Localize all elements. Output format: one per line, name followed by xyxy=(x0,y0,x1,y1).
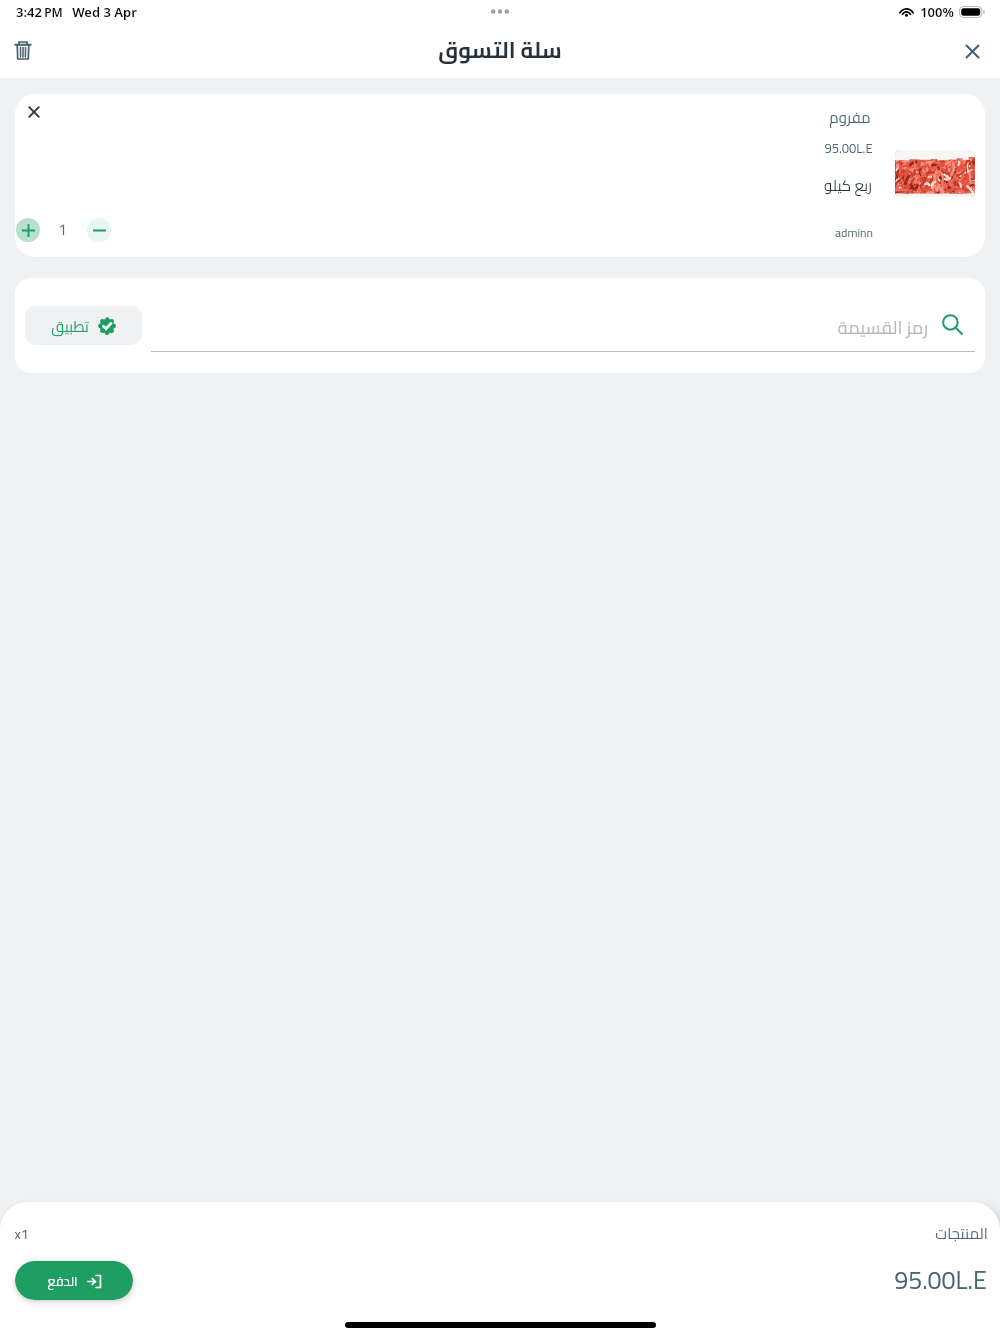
staticText: PM xyxy=(44,4,63,20)
button[interactable]: تطبيق xyxy=(25,306,142,345)
button[interactable]: Decrease quantity xyxy=(87,218,111,242)
button[interactable]: الدفع xyxy=(15,1261,133,1300)
button[interactable]: Remove item xyxy=(15,94,53,131)
staticText: 1 xyxy=(58,215,67,243)
staticText: x1 xyxy=(14,1221,29,1247)
button[interactable]: رمز القسيمة xyxy=(151,298,975,353)
staticText: تطبيق xyxy=(51,312,89,340)
staticText: ربع كيلو xyxy=(824,171,872,199)
button[interactable]: Search coupon xyxy=(937,309,967,339)
button[interactable]: Remove item xyxy=(15,94,985,257)
staticText: المنتجات xyxy=(935,1219,988,1247)
staticText: الدفع xyxy=(47,1269,78,1293)
staticText: adminn xyxy=(835,221,873,243)
staticText: سلة التسوق xyxy=(438,29,562,70)
staticText: مفروم xyxy=(829,103,871,131)
staticText: 95.00L.E xyxy=(824,136,873,160)
staticText: 3:42 xyxy=(16,3,42,21)
staticText: رمز القسيمة xyxy=(717,311,928,345)
button[interactable]: Increase quantity xyxy=(16,218,40,242)
button[interactable]: Delete all items xyxy=(1,28,45,72)
staticText: Wed 3 Apr xyxy=(72,3,137,21)
staticText: 95.00L.E xyxy=(894,1256,987,1303)
staticText: 100% xyxy=(920,3,954,21)
button[interactable]: Close xyxy=(950,29,994,73)
